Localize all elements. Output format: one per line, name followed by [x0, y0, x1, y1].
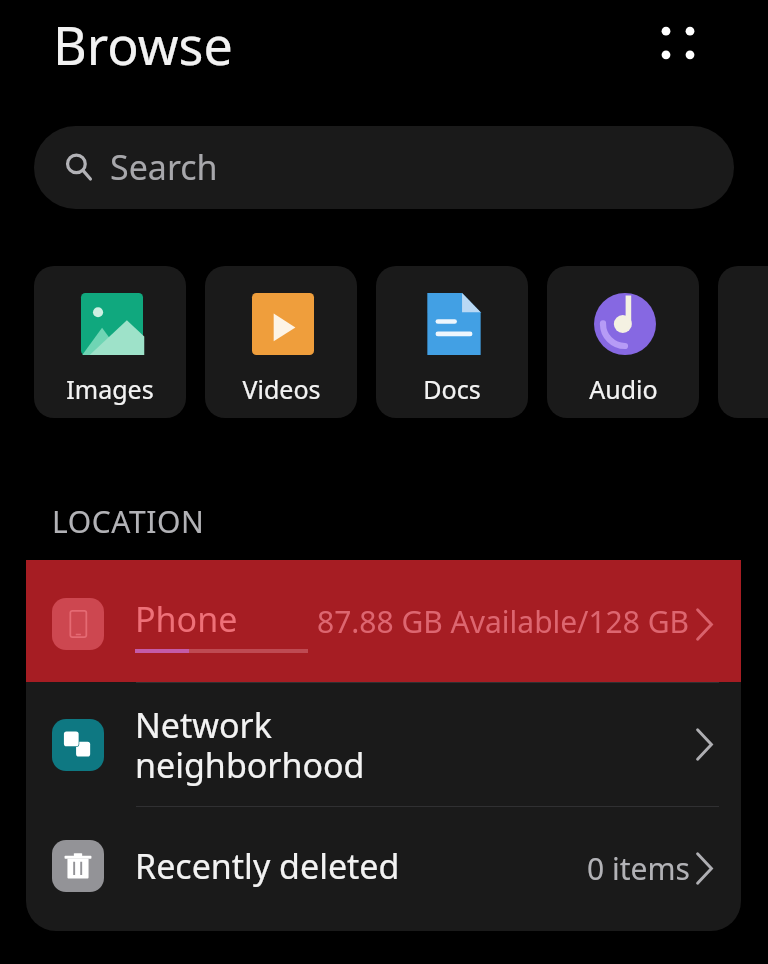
button[interactable]: Phone [26, 560, 741, 682]
button[interactable]: More categories [718, 266, 768, 418]
staticText: Network neighborhood [135, 702, 365, 788]
staticText: Phone [135, 596, 238, 642]
button[interactable]: Images [34, 266, 186, 418]
staticText: LOCATION [52, 501, 205, 542]
button[interactable]: Videos [205, 266, 357, 418]
button[interactable]: Audio [547, 266, 699, 418]
button[interactable]: Docs [376, 266, 528, 418]
staticText: Videos [242, 372, 321, 406]
staticText: Docs [423, 372, 481, 406]
staticText: Audio [589, 372, 658, 406]
staticText: Search [110, 144, 218, 190]
button[interactable]: Recently deleted [26, 807, 741, 930]
button[interactable]: Search [34, 126, 734, 209]
button[interactable]: More options [650, 15, 706, 71]
staticText: Browse [53, 9, 233, 80]
staticText: Recently deleted [135, 843, 400, 889]
staticText: 0 items [587, 848, 690, 889]
staticText: Images [66, 372, 154, 406]
button[interactable]: Network neighborhood [26, 683, 741, 806]
staticText: 87.88 GB Available/128 GB [317, 601, 690, 642]
